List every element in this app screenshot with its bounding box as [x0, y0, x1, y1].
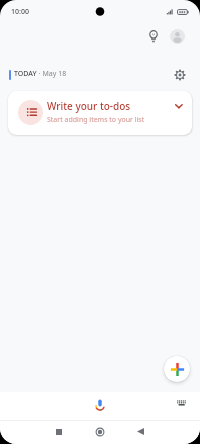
button[interactable]: Expand — [171, 98, 187, 114]
button[interactable]: Settings — [170, 65, 190, 85]
button[interactable]: Create — [164, 356, 190, 382]
button[interactable]: Back — [132, 423, 149, 440]
button[interactable]: Voice search — [94, 398, 106, 412]
staticText: Start adding items to your list — [47, 115, 145, 125]
staticText: TODAY — [14, 69, 37, 79]
button[interactable]: Keyboard — [173, 397, 189, 409]
button[interactable]: Write your to-dos — [8, 91, 192, 135]
staticText: Write your to-dos — [47, 99, 131, 113]
button[interactable]: Tips — [142, 25, 164, 47]
button[interactable]: Home — [91, 423, 108, 440]
button[interactable]: Account — [170, 29, 185, 44]
staticText: 10:00 — [11, 7, 29, 17]
button[interactable]: Recents — [50, 423, 67, 440]
staticText: · May 18 — [37, 69, 67, 79]
